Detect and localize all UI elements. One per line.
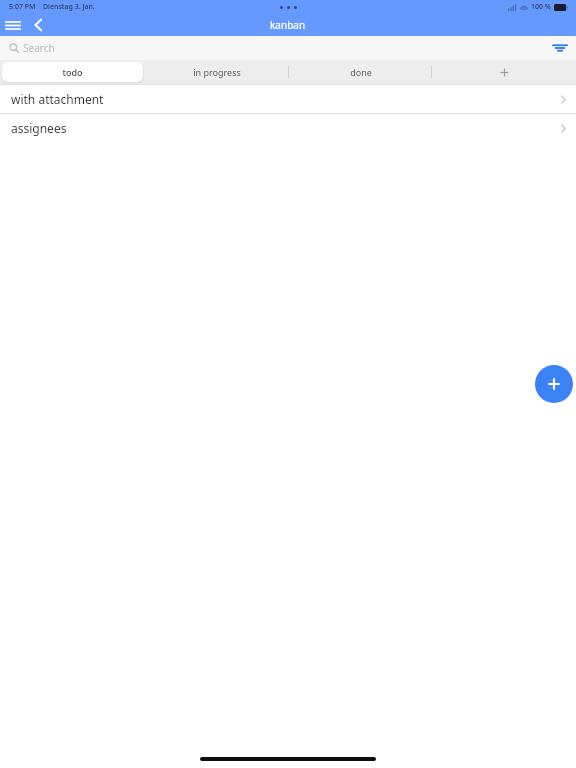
button[interactable]: Filter <box>544 36 576 60</box>
staticText: todo <box>62 66 83 78</box>
button[interactable]: in progress <box>145 60 288 84</box>
button[interactable]: Menu <box>0 14 26 36</box>
button[interactable]: Search <box>9 41 536 55</box>
button[interactable]: Add card <box>535 365 573 403</box>
staticText: Search <box>23 41 55 55</box>
button[interactable]: with attachment <box>0 85 576 113</box>
staticText: kanban <box>270 18 306 32</box>
button[interactable]: todo <box>2 62 143 82</box>
staticText: 5:07 PM <box>9 2 36 12</box>
staticText: Dienstag 3. Jan. <box>43 2 95 12</box>
button[interactable]: Add list <box>432 60 576 84</box>
button[interactable]: assignees <box>0 114 576 142</box>
staticText: with attachment <box>11 91 104 107</box>
staticText: 100 % <box>531 2 551 12</box>
staticText: done <box>350 66 372 78</box>
staticText: in progress <box>193 66 241 78</box>
button[interactable]: Back <box>26 14 50 36</box>
button[interactable]: done <box>289 60 432 84</box>
staticText: assignees <box>11 120 67 136</box>
